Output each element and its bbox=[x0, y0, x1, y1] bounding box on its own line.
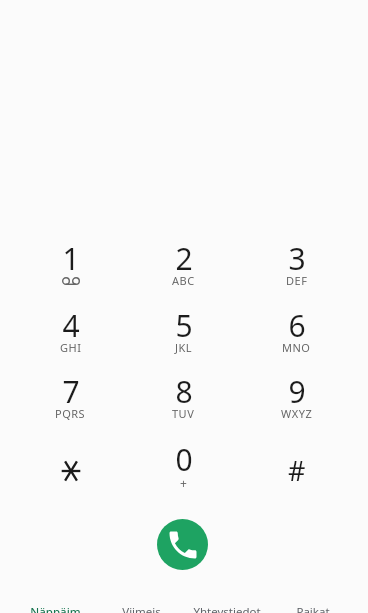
staticText: Näppäim bbox=[30, 604, 81, 613]
staticText: 7 bbox=[62, 371, 80, 412]
staticText: 8 bbox=[175, 371, 193, 412]
staticText: Yhteystiedot bbox=[193, 604, 261, 613]
staticText: 4 bbox=[62, 305, 80, 346]
button[interactable]: Näppäim bbox=[12, 590, 98, 613]
staticText: PQRS bbox=[55, 406, 86, 421]
staticText: # bbox=[288, 452, 306, 489]
staticText: WXYZ bbox=[281, 406, 313, 421]
staticText: GHI bbox=[60, 340, 82, 355]
button[interactable]: Paikat bbox=[270, 590, 356, 613]
staticText: 5 bbox=[175, 305, 193, 346]
staticText: Paikat bbox=[296, 604, 330, 613]
button[interactable]: Viimeis bbox=[98, 590, 184, 613]
staticText: JKL bbox=[175, 340, 193, 355]
staticText: MNO bbox=[282, 340, 311, 355]
button[interactable]: 3 bbox=[240, 238, 353, 304]
staticText: 1 bbox=[62, 238, 80, 279]
button[interactable]: Yhteystiedot bbox=[184, 590, 270, 613]
staticText: TUV bbox=[172, 406, 195, 421]
staticText: 3 bbox=[288, 238, 306, 279]
button[interactable]: 5 bbox=[127, 305, 240, 371]
button[interactable]: 4 bbox=[14, 305, 127, 371]
button[interactable]: Star bbox=[14, 438, 127, 504]
button[interactable]: 2 bbox=[127, 238, 240, 304]
button[interactable]: Pound bbox=[240, 437, 353, 503]
button[interactable]: 9 bbox=[240, 371, 353, 437]
staticText: 2 bbox=[175, 238, 193, 279]
button[interactable]: 1 bbox=[14, 238, 127, 304]
button[interactable]: 7 bbox=[14, 371, 127, 437]
staticText: ABC bbox=[172, 273, 195, 288]
button[interactable]: 0 bbox=[127, 439, 240, 505]
button[interactable]: 6 bbox=[240, 305, 353, 371]
staticText: 9 bbox=[288, 371, 306, 412]
staticText: Viimeis bbox=[122, 604, 161, 613]
staticText: + bbox=[180, 475, 187, 491]
button[interactable]: Call bbox=[157, 519, 208, 570]
button[interactable]: 8 bbox=[127, 371, 240, 437]
staticText: 0 bbox=[175, 439, 193, 480]
staticText: 6 bbox=[288, 305, 306, 346]
staticText: DEF bbox=[286, 273, 308, 288]
